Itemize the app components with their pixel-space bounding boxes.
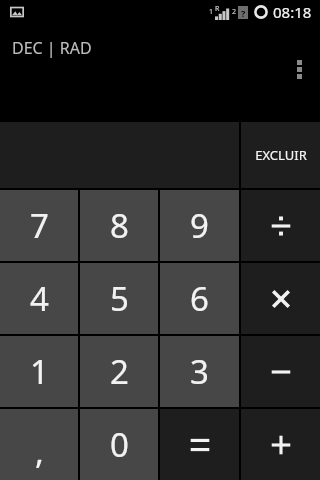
button[interactable]: 1 — [0, 336, 78, 407]
button[interactable]: 7 — [0, 190, 78, 261]
button[interactable]: 4 — [0, 263, 78, 334]
staticText: 9 — [190, 203, 209, 248]
staticText: , — [35, 429, 44, 474]
button[interactable]: 5 — [80, 263, 158, 334]
button[interactable]: Equals — [160, 409, 239, 480]
button[interactable]: DEC | RAD — [12, 37, 92, 59]
button[interactable]: 8 — [80, 190, 158, 261]
staticText: EXCLUIR — [255, 146, 307, 164]
button[interactable]: Divide — [241, 190, 320, 261]
staticText: 2 — [232, 7, 237, 17]
button[interactable]: Plus — [241, 409, 320, 480]
button[interactable]: Minus — [241, 336, 320, 407]
staticText: 08:18 — [273, 2, 312, 22]
staticText: ? — [241, 7, 246, 19]
staticText: 8 — [110, 203, 129, 248]
button[interactable]: , — [0, 409, 78, 480]
staticText: 7 — [30, 203, 49, 248]
button[interactable]: 2 — [80, 336, 158, 407]
button[interactable]: 3 — [160, 336, 239, 407]
staticText: 2 — [110, 349, 129, 394]
staticText: 0 — [110, 422, 129, 467]
staticText: 1 — [30, 349, 49, 394]
button[interactable]: EXCLUIR — [241, 122, 320, 188]
button[interactable]: Multiply — [241, 263, 320, 334]
staticText: 5 — [110, 276, 129, 321]
button[interactable]: 9 — [160, 190, 239, 261]
staticText: R — [215, 4, 220, 14]
button[interactable]: 0 — [80, 409, 158, 480]
button[interactable]: More options — [286, 54, 312, 84]
staticText: 6 — [190, 276, 209, 321]
button[interactable]: 6 — [160, 263, 239, 334]
staticText: 3 — [190, 349, 209, 394]
staticText: 4 — [30, 276, 49, 321]
staticText: 1 — [209, 7, 214, 17]
